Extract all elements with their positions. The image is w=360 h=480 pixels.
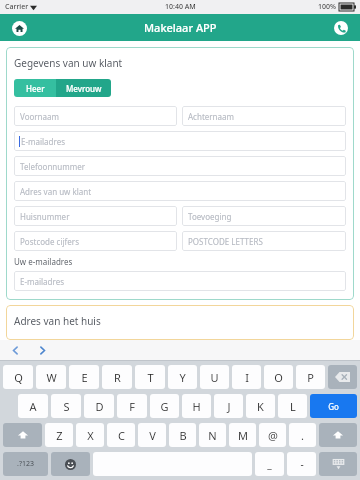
button[interactable]: D	[84, 394, 114, 418]
staticText: _	[267, 457, 272, 471]
button[interactable]: E-mailadres	[14, 271, 346, 291]
staticText: H	[192, 399, 201, 414]
staticText: Adres van het huis	[14, 314, 101, 328]
staticText: .?123	[17, 459, 34, 469]
button[interactable]: F	[117, 394, 147, 418]
button[interactable]: Emoji	[51, 452, 90, 476]
staticText: .	[301, 428, 304, 443]
button[interactable]: Backspace	[328, 365, 357, 389]
button[interactable]: X	[76, 423, 104, 447]
button[interactable]: Z	[45, 423, 73, 447]
button[interactable]: E	[69, 365, 99, 389]
staticText: Q	[14, 370, 23, 385]
staticText: Z	[56, 428, 63, 443]
button[interactable]: U	[200, 365, 229, 389]
staticText: X	[87, 428, 94, 443]
staticText: O	[274, 370, 283, 385]
button[interactable]: H	[182, 394, 211, 418]
staticText: L	[290, 399, 296, 414]
staticText: C	[118, 428, 125, 443]
button[interactable]: Hide keyboard	[319, 452, 357, 476]
button[interactable]: Y	[168, 365, 197, 389]
button[interactable]: Adres van uw klant	[14, 181, 346, 201]
staticText: S	[63, 399, 70, 414]
button[interactable]: _	[255, 452, 284, 476]
button[interactable]: POSTCODE LETTERS	[182, 231, 346, 251]
button[interactable]: Telefoonnummer	[14, 156, 346, 176]
staticText: D	[95, 399, 104, 414]
button[interactable]: Postcode cijfers	[14, 231, 177, 251]
button[interactable]: Voornaam	[14, 106, 177, 126]
staticText: Postcode cijfers	[20, 236, 79, 247]
button[interactable]: Mevrouw	[56, 79, 111, 97]
button[interactable]: Home	[9, 18, 29, 38]
button[interactable]: Previous field	[6, 341, 24, 359]
staticText: -	[300, 457, 304, 471]
button[interactable]: Toevoeging	[182, 206, 346, 226]
staticText: Carrier	[5, 2, 29, 12]
button[interactable]: G	[150, 394, 179, 418]
button[interactable]: B	[169, 423, 196, 447]
staticText: Adres van uw klant	[20, 186, 92, 197]
staticText: E-mailadres	[20, 276, 65, 287]
button[interactable]: @	[259, 423, 286, 447]
button[interactable]: I	[232, 365, 261, 389]
button[interactable]: Achternaam	[182, 106, 346, 126]
button[interactable]: .?123	[3, 452, 48, 476]
staticText: Mevrouw	[66, 83, 102, 94]
button[interactable]: W	[36, 365, 66, 389]
staticText: @	[268, 428, 278, 443]
button[interactable]: R	[102, 365, 132, 389]
staticText: Toevoeging	[188, 211, 232, 222]
staticText: Huisnummer	[20, 211, 70, 222]
button[interactable]: P	[296, 365, 325, 389]
button[interactable]: Go	[310, 394, 357, 418]
staticText: A	[29, 399, 37, 414]
button[interactable]: O	[264, 365, 293, 389]
staticText: T	[147, 370, 154, 385]
staticText: Uw e-mailadres	[14, 256, 73, 267]
button[interactable]: L	[278, 394, 307, 418]
button[interactable]: E-mailadres	[14, 131, 346, 151]
button[interactable]: .	[289, 423, 316, 447]
button[interactable]: V	[138, 423, 166, 447]
button[interactable]: Shift	[3, 423, 42, 447]
staticText: K	[257, 399, 264, 414]
button[interactable]: Heer	[14, 79, 56, 97]
button[interactable]: Huisnummer	[14, 206, 177, 226]
staticText: Achternaam	[188, 111, 234, 122]
staticText: J	[227, 399, 231, 414]
staticText: B	[179, 428, 187, 443]
staticText: V	[149, 428, 156, 443]
button[interactable]: S	[51, 394, 81, 418]
button[interactable]: N	[199, 423, 226, 447]
staticText: E	[81, 370, 88, 385]
staticText: M	[238, 428, 248, 443]
button[interactable]: C	[107, 423, 135, 447]
staticText: POSTCODE LETTERS	[188, 236, 263, 247]
staticText: U	[210, 370, 219, 385]
staticText: W	[46, 370, 57, 385]
button[interactable]: Call	[331, 18, 351, 38]
button[interactable]: T	[135, 365, 165, 389]
button[interactable]: J	[214, 394, 243, 418]
button[interactable]: -	[287, 452, 316, 476]
staticText: Makelaar APP	[144, 20, 217, 35]
button[interactable]: Next field	[33, 341, 51, 359]
button[interactable]: Q	[3, 365, 33, 389]
staticText: E-mailadres	[21, 136, 66, 147]
staticText: I	[245, 370, 249, 385]
staticText: Go	[328, 401, 339, 412]
button[interactable]: A	[18, 394, 48, 418]
staticText: 100%	[318, 2, 336, 12]
button[interactable]: K	[246, 394, 275, 418]
staticText: P	[307, 370, 314, 385]
button[interactable]: Shift	[319, 423, 357, 447]
staticText: Telefoonnummer	[20, 161, 86, 172]
button[interactable]: M	[229, 423, 256, 447]
staticText: Gegevens van uw klant	[14, 56, 123, 70]
staticText: N	[208, 428, 217, 443]
staticText: F	[129, 399, 135, 414]
staticText: Y	[179, 370, 186, 385]
